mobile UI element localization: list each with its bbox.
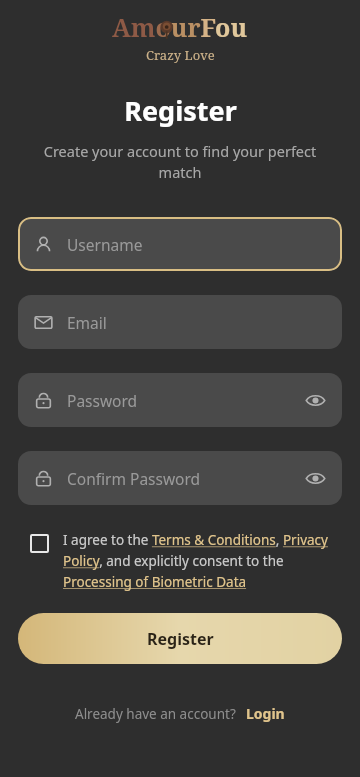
staticText: Crazy Love	[146, 46, 215, 64]
staticText: Email	[67, 312, 107, 333]
staticText: Password	[67, 390, 138, 411]
staticText: Register	[147, 628, 214, 650]
staticText: I agree to the Terms & Conditions, Priva…	[63, 531, 338, 591]
staticText: Username	[67, 234, 143, 255]
button[interactable]: Login	[246, 704, 285, 723]
button[interactable]: Password	[18, 373, 342, 427]
staticText: Confirm Password	[67, 468, 201, 489]
staticText: AmourFou	[112, 10, 248, 44]
button[interactable]: Agree to terms checkbox	[30, 534, 49, 553]
button[interactable]: Toggle password visibility	[305, 390, 326, 411]
button[interactable]: Username	[18, 217, 342, 271]
button[interactable]: Confirm Password	[18, 451, 342, 505]
button[interactable]: Email	[18, 295, 342, 349]
staticText: Already have an account?	[75, 705, 236, 723]
button[interactable]: Toggle password visibility	[305, 468, 326, 489]
staticText: Login	[246, 704, 285, 723]
button[interactable]: Agree to terms checkbox	[30, 531, 338, 591]
staticText: Create your account to find your perfect…	[30, 141, 330, 183]
staticText: Register	[124, 92, 237, 129]
button[interactable]: Register	[18, 613, 342, 664]
